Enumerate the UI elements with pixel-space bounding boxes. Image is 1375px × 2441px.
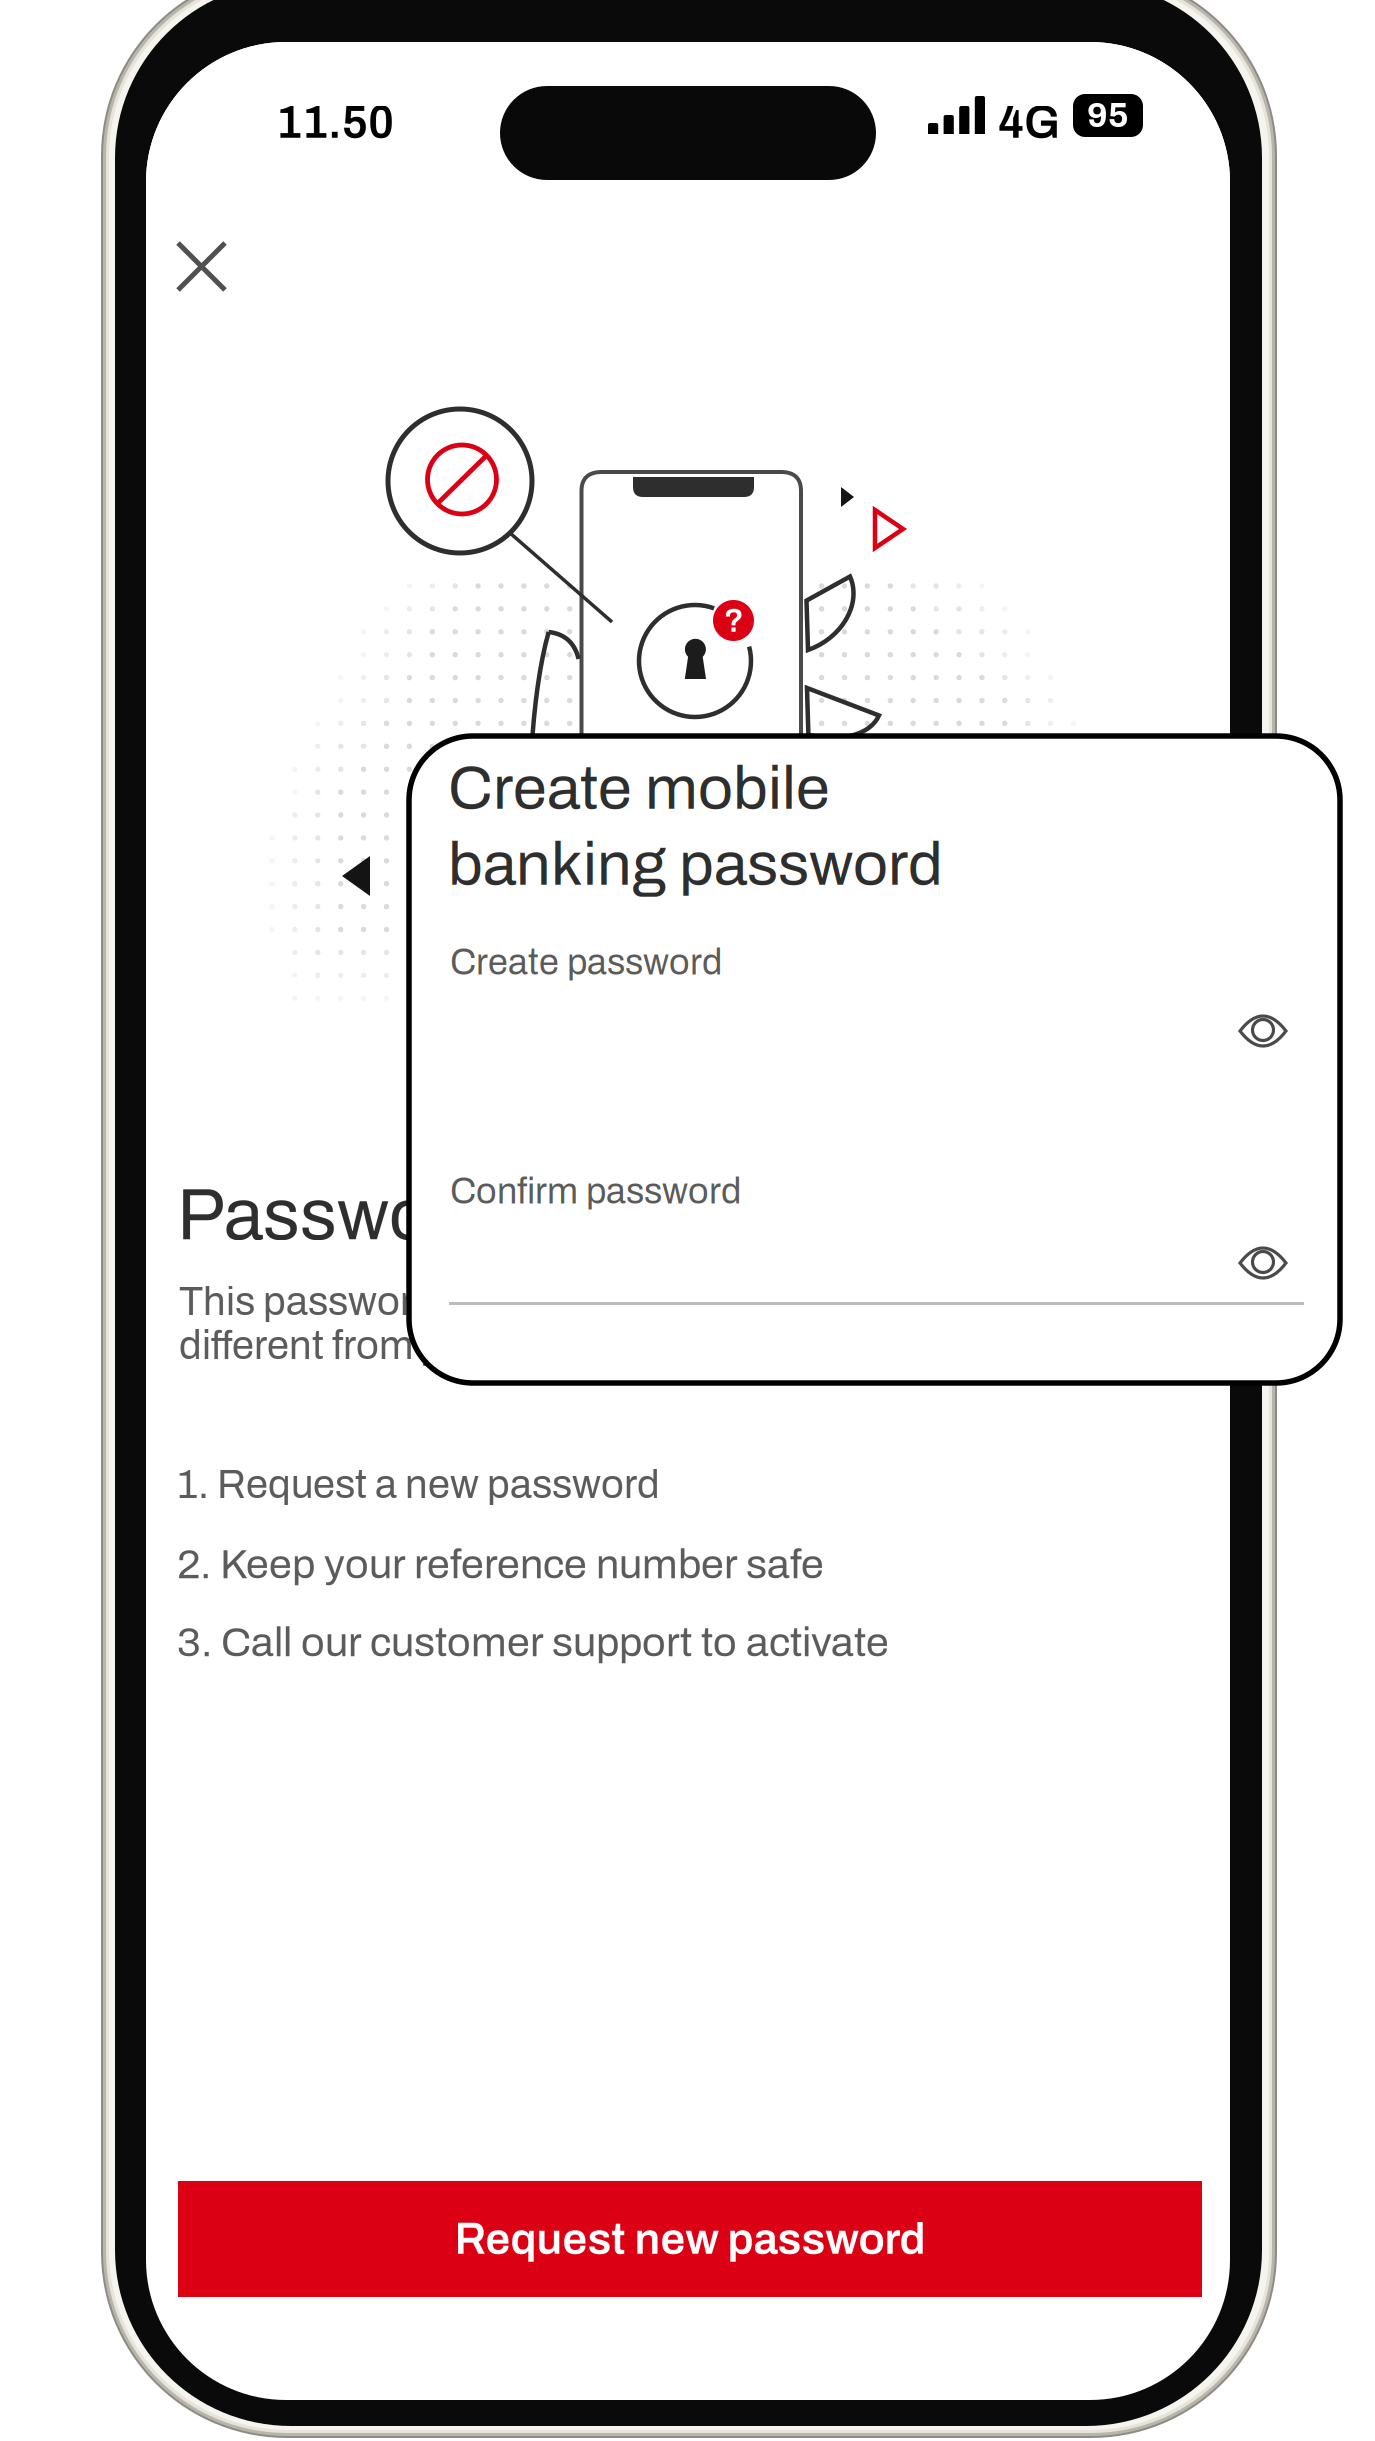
staticText: 2. Keep your reference number safe bbox=[177, 1542, 824, 1587]
button[interactable]: Close bbox=[146, 212, 276, 342]
staticText: ? bbox=[723, 602, 743, 639]
staticText: 3. Call our customer support to activate bbox=[177, 1620, 889, 1665]
staticText: 1. Request a new password bbox=[177, 1463, 660, 1506]
staticText: Create mobile bbox=[448, 755, 830, 822]
staticText: Create password bbox=[450, 943, 722, 982]
staticText: 11.50 bbox=[276, 98, 394, 147]
button[interactable]: Show password bbox=[1238, 1011, 1288, 1049]
staticText: This password needs to be bbox=[179, 1280, 650, 1323]
staticText: Confirm password bbox=[450, 1172, 741, 1211]
staticText: Password bbox=[177, 1176, 494, 1254]
staticText: banking password bbox=[448, 831, 943, 898]
button[interactable]: Request new password bbox=[178, 2181, 1202, 2297]
staticText: Request new password bbox=[454, 2215, 925, 2263]
staticText: 95 bbox=[1087, 97, 1129, 134]
staticText: 4G bbox=[998, 98, 1060, 147]
button[interactable]: Show confirm password bbox=[1238, 1243, 1288, 1281]
staticText: different from your card PIN. bbox=[179, 1324, 671, 1367]
